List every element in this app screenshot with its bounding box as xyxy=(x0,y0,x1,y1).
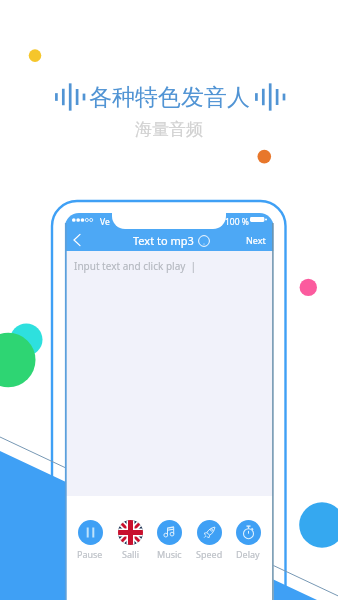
staticText: Music xyxy=(157,548,182,560)
staticText: Speed xyxy=(196,548,223,560)
staticText: 海量音频 xyxy=(135,119,203,140)
button[interactable]: Pause xyxy=(71,520,109,560)
staticText: Ve xyxy=(100,216,110,228)
staticText: Salli xyxy=(122,548,139,560)
button[interactable]: Back xyxy=(67,230,87,250)
staticText: Delay xyxy=(236,548,260,560)
button[interactable]: Delay xyxy=(229,520,267,560)
staticText: Input text and click play | xyxy=(74,259,197,273)
button[interactable]: Next xyxy=(246,234,266,246)
button[interactable]: Music xyxy=(150,520,188,560)
button[interactable]: Salli xyxy=(111,520,149,560)
button[interactable]: Speed xyxy=(190,520,228,560)
staticText: 各种特色发音人 xyxy=(89,83,250,112)
staticText: Pause xyxy=(77,548,103,560)
staticText: 100 % xyxy=(225,216,249,228)
staticText: Next xyxy=(246,234,266,246)
staticText: Text to mp3 xyxy=(133,233,194,248)
